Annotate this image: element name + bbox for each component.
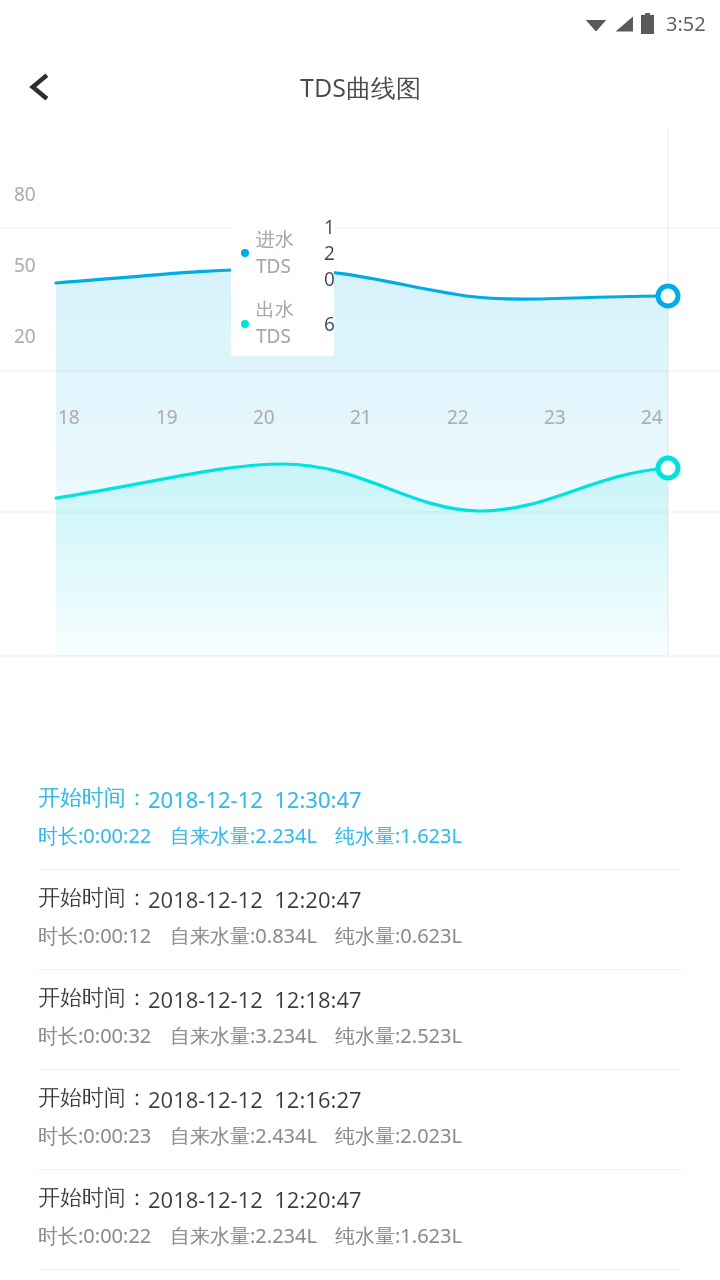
button[interactable]: 开始时间： — [0, 870, 720, 970]
staticText: 开始时间： — [38, 1084, 148, 1112]
staticText: 时长:0:00:32 — [38, 1022, 152, 1049]
staticText: TDS曲线图 — [300, 70, 421, 104]
button[interactable]: 开始时间： — [0, 970, 720, 1070]
staticText: 纯水量:1.623L — [335, 822, 462, 849]
staticText: 自来水量:2.434L — [170, 1122, 317, 1149]
staticText: 开始时间： — [38, 984, 148, 1012]
staticText: 自来水量:0.834L — [170, 922, 317, 949]
staticText: 2018-12-12 12:30:47 — [148, 784, 362, 814]
staticText: 80 — [14, 181, 36, 207]
button[interactable]: 开始时间： — [0, 1070, 720, 1170]
button[interactable]: Back — [12, 59, 68, 115]
staticText: 3:52 — [666, 10, 706, 37]
staticText: 20 — [14, 323, 36, 349]
staticText: 2018-12-12 12:16:27 — [148, 1084, 362, 1114]
staticText: 开始时间： — [38, 884, 148, 912]
staticText: 纯水量:2.523L — [335, 1022, 462, 1049]
staticText: 2018-12-12 12:20:47 — [148, 884, 362, 914]
staticText: 时长:0:00:22 — [38, 822, 152, 849]
staticText: 开始时间： — [38, 784, 148, 812]
staticText: 24 — [641, 404, 663, 430]
staticText: 自来水量:2.234L — [170, 1222, 317, 1249]
staticText: 20 — [253, 404, 275, 430]
staticText: 纯水量:0.623L — [335, 922, 462, 949]
staticText: 50 — [14, 252, 36, 278]
staticText: 纯水量:2.023L — [335, 1122, 462, 1149]
staticText: 23 — [544, 404, 566, 430]
staticText: 自来水量:2.234L — [170, 822, 317, 849]
staticText: 时长:0:00:22 — [38, 1222, 152, 1249]
staticText: 纯水量:1.623L — [335, 1222, 462, 1249]
staticText: 自来水量:3.234L — [170, 1022, 317, 1049]
staticText: 19 — [156, 404, 178, 430]
staticText: 出水TDS — [256, 298, 324, 349]
staticText: 进水TDS — [256, 228, 324, 279]
staticText: 时长:0:00:23 — [38, 1122, 152, 1149]
staticText: 18 — [58, 404, 80, 430]
staticText: 21 — [350, 404, 372, 430]
staticText: 开始时间： — [38, 1184, 148, 1212]
staticText: 2018-12-12 12:20:47 — [148, 1184, 362, 1214]
button[interactable]: 开始时间： — [0, 770, 720, 870]
staticText: 22 — [447, 404, 469, 430]
button[interactable]: 开始时间： — [0, 1170, 720, 1270]
staticText: 2018-12-12 12:18:47 — [148, 984, 362, 1014]
staticText: 时长:0:00:12 — [38, 922, 152, 949]
